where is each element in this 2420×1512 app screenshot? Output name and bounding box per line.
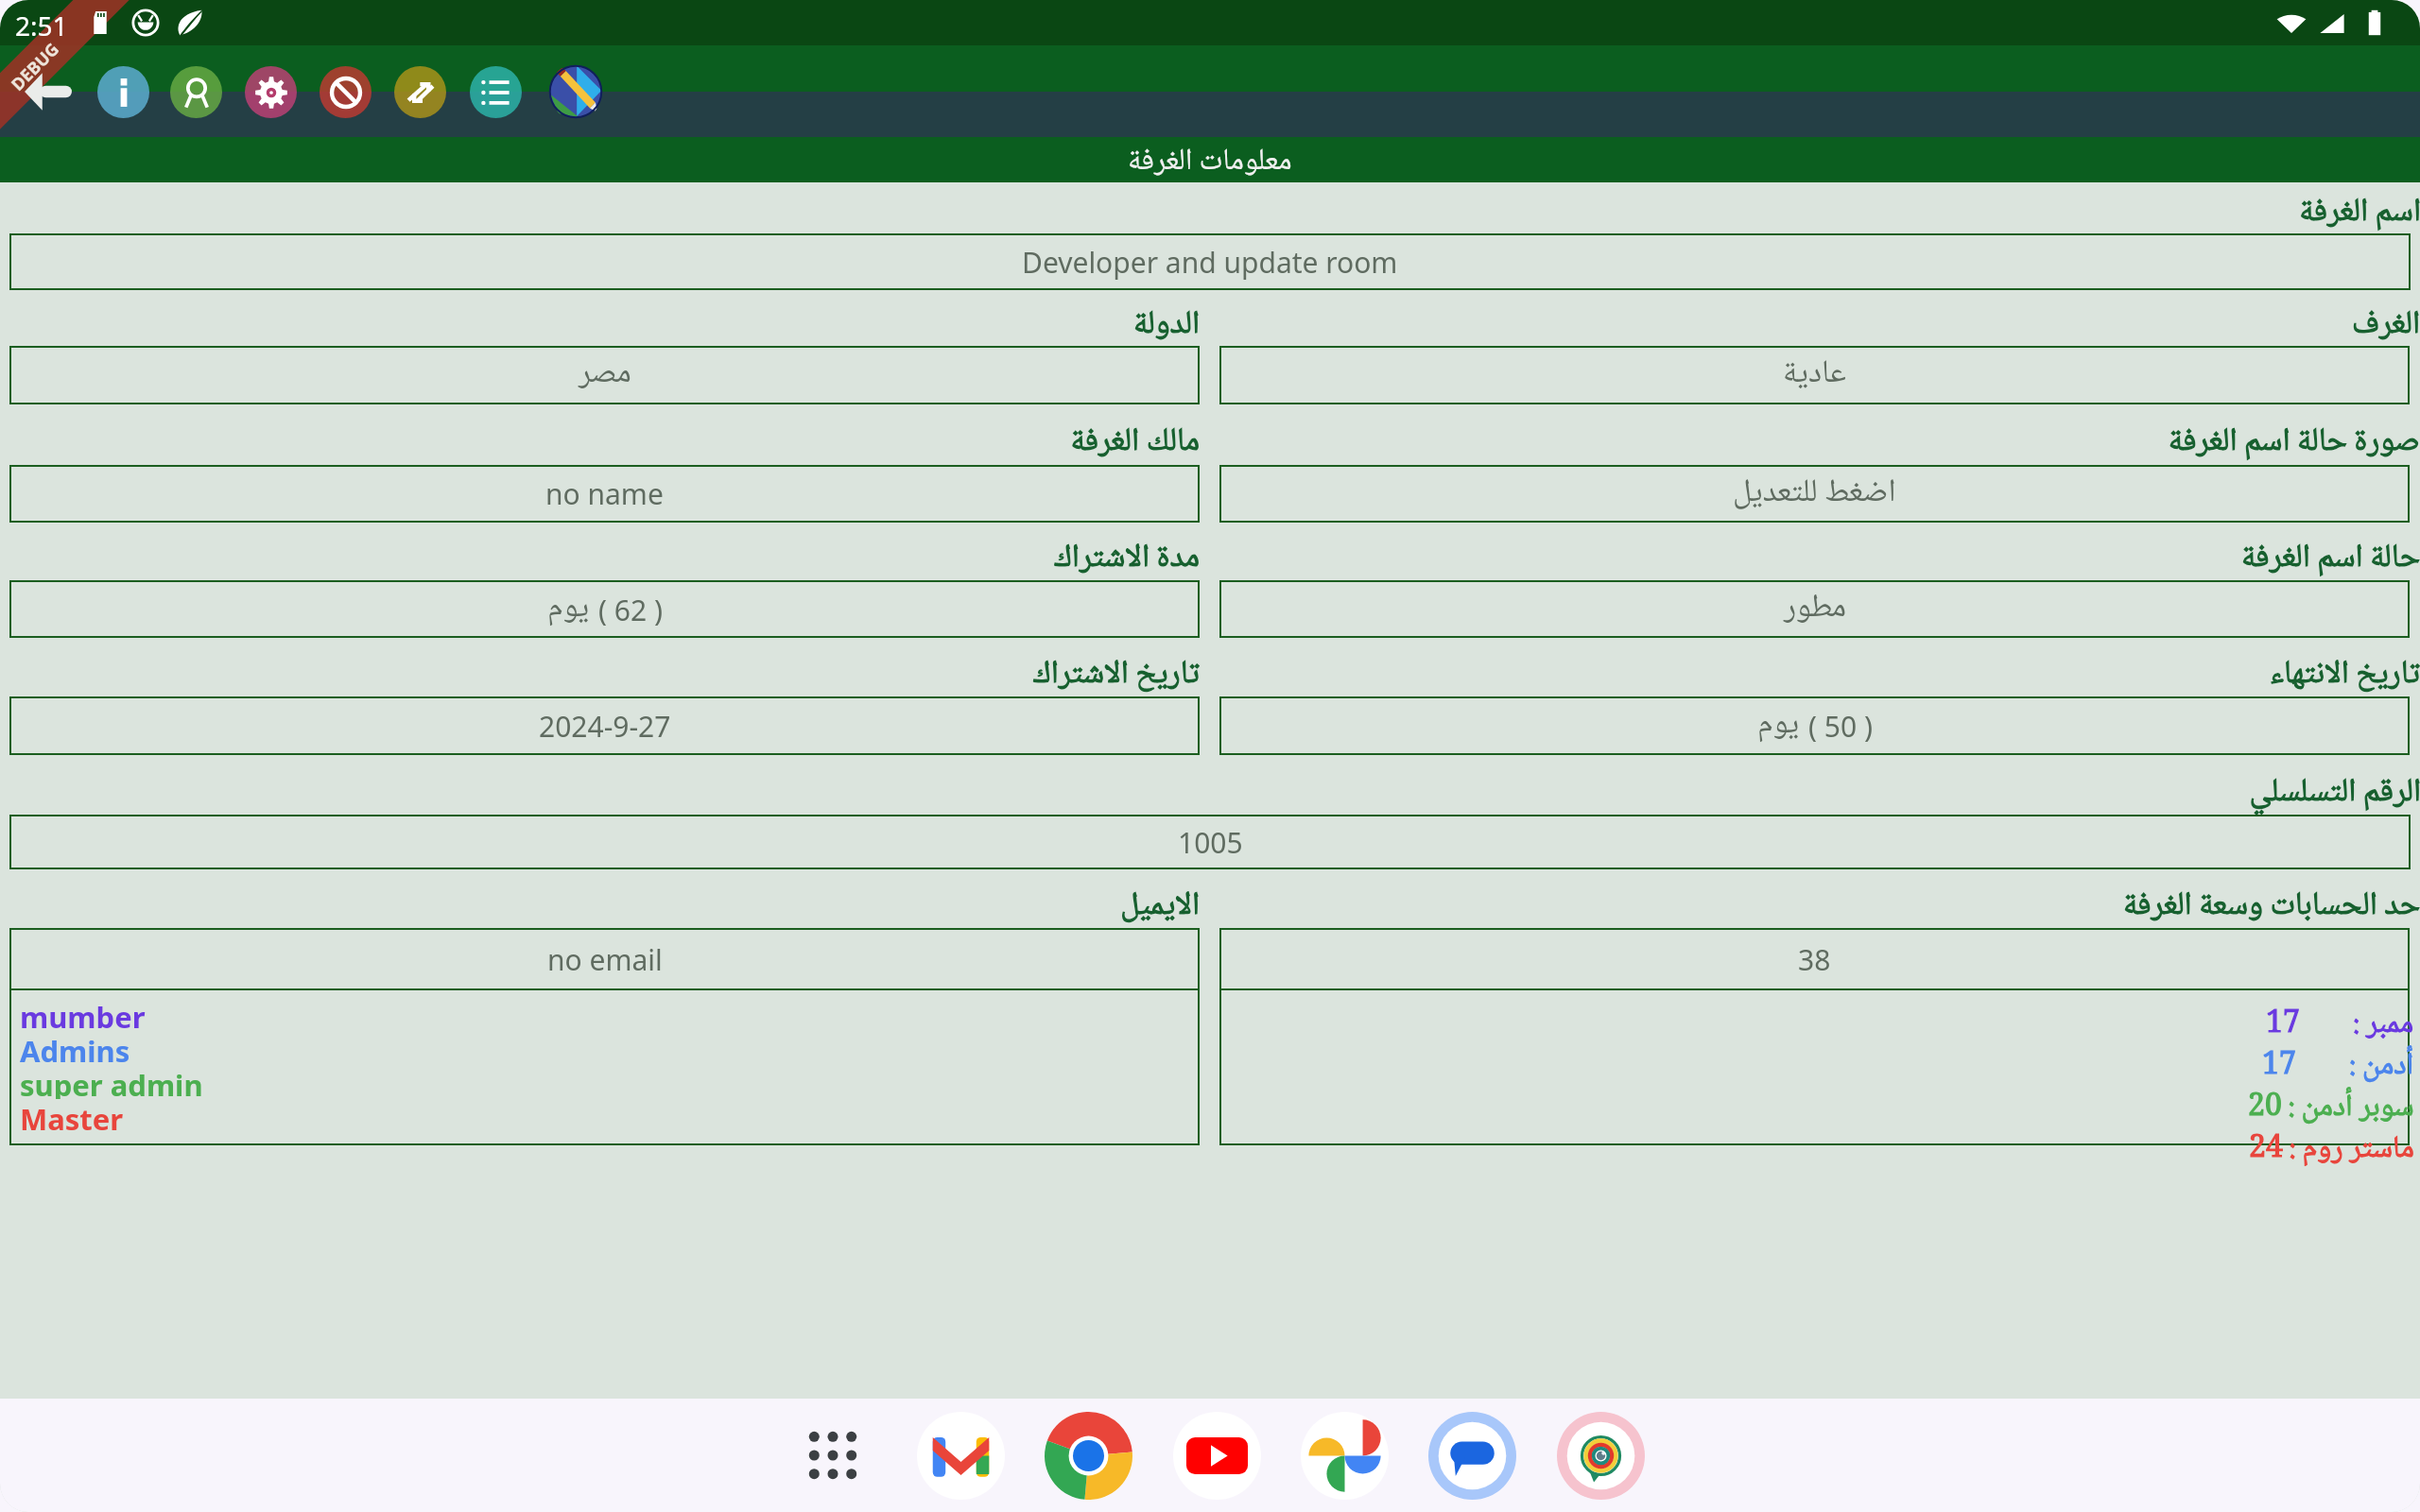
button[interactable]: Edit bbox=[548, 64, 603, 119]
staticText: 2:51 bbox=[15, 8, 68, 43]
staticText: no email bbox=[547, 940, 663, 979]
staticText: ماستر روم : 24 bbox=[2249, 1125, 2414, 1166]
staticText: حد الحسابات وسعة الغرفة bbox=[1230, 880, 2420, 935]
button[interactable]: Photos bbox=[1299, 1410, 1390, 1501]
staticText: عادية bbox=[1783, 348, 1846, 403]
staticText: ممبر : 17 bbox=[2266, 1000, 2414, 1041]
button[interactable]: Back bbox=[22, 65, 75, 118]
staticText: سوبر أدمن : 20 bbox=[2248, 1083, 2414, 1125]
button[interactable]: Settings bbox=[245, 66, 297, 118]
button[interactable]: Messages bbox=[1426, 1410, 1517, 1501]
staticText: الغرف bbox=[1230, 299, 2420, 353]
staticText: يوم bbox=[1757, 698, 1800, 753]
staticText: Master bbox=[20, 1099, 124, 1133]
staticText: mumber bbox=[20, 997, 146, 1031]
button[interactable]: YouTube bbox=[1171, 1410, 1262, 1501]
button[interactable]: 38 bbox=[1219, 928, 2410, 990]
button[interactable]: عادية bbox=[1219, 346, 2410, 404]
button[interactable]: Transfer bbox=[394, 66, 446, 118]
staticText: يوم bbox=[547, 582, 590, 637]
staticText: ( 50 ) bbox=[1808, 707, 1873, 746]
staticText: اضغط للتعديل bbox=[1733, 467, 1896, 522]
staticText: معلومات الغرفة bbox=[1128, 137, 1292, 182]
staticText: حالة اسم الغرفة bbox=[1230, 532, 2420, 587]
staticText: DEBUG bbox=[6, 38, 64, 96]
button[interactable]: Gmail bbox=[915, 1410, 1006, 1501]
staticText: 38 bbox=[1798, 940, 1831, 979]
button[interactable]: no name bbox=[9, 465, 1200, 523]
button[interactable]: Developer and update room bbox=[9, 233, 2411, 290]
staticText: صورة حالة اسم الغرفة bbox=[1230, 416, 2420, 471]
button[interactable]: Search bbox=[170, 66, 222, 118]
button[interactable]: no email bbox=[9, 928, 1200, 990]
button[interactable]: مصر bbox=[9, 346, 1200, 404]
staticText: الايميل bbox=[9, 880, 1200, 935]
staticText: مطور bbox=[1784, 582, 1846, 637]
staticText: Admins bbox=[20, 1031, 130, 1065]
button[interactable]: مطور bbox=[1219, 580, 2410, 638]
staticText: 2024-9-27 bbox=[539, 707, 671, 746]
staticText: تاريخ الاشتراك bbox=[9, 648, 1200, 703]
staticText: تاريخ الانتهاء bbox=[1230, 648, 2420, 703]
staticText: الرقم التسلسلي bbox=[20, 766, 2420, 821]
button[interactable]: Info bbox=[97, 66, 149, 118]
button[interactable]: Chrome bbox=[1043, 1410, 1133, 1501]
staticText: ( 62 ) bbox=[598, 591, 663, 629]
button[interactable]: List bbox=[470, 66, 522, 118]
staticText: Developer and update room bbox=[1022, 243, 1398, 282]
button[interactable]: Fitness bbox=[1555, 1410, 1646, 1501]
staticText: no name bbox=[545, 474, 664, 513]
button[interactable]: 2024-9-27 bbox=[9, 696, 1200, 755]
staticText: الدولة bbox=[9, 299, 1200, 353]
staticText: أدمن : 17 bbox=[2262, 1041, 2414, 1083]
button[interactable]: Block bbox=[320, 66, 372, 118]
staticText: super admin bbox=[20, 1065, 203, 1099]
staticText: 1005 bbox=[1178, 823, 1243, 862]
button[interactable]: All apps bbox=[787, 1410, 878, 1501]
button[interactable]: يوم bbox=[9, 580, 1200, 638]
button[interactable]: 1005 bbox=[9, 815, 2411, 869]
staticText: مدة الاشتراك bbox=[9, 532, 1200, 587]
button[interactable]: يوم bbox=[1219, 696, 2410, 755]
button[interactable]: اضغط للتعديل bbox=[1219, 465, 2410, 523]
staticText: اسم الغرفة bbox=[20, 186, 2420, 241]
staticText: مصر bbox=[579, 348, 631, 403]
staticText: مالك الغرفة bbox=[9, 416, 1200, 471]
